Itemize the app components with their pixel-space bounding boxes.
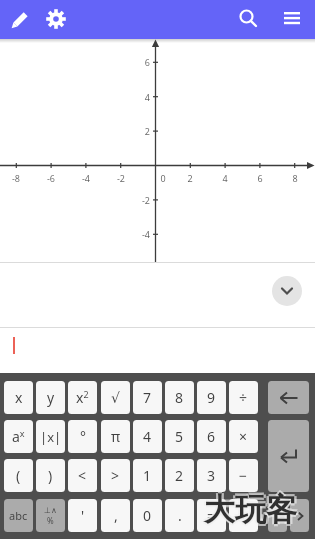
staticText: 9 (207, 388, 216, 407)
staticText: -4 (126, 228, 150, 240)
staticText: 2 (178, 172, 202, 184)
button[interactable]: . (165, 499, 194, 532)
button[interactable]: 6 (197, 420, 226, 453)
button[interactable]: ' (68, 499, 97, 532)
button[interactable]: y (36, 381, 65, 414)
staticText: ÷ (239, 388, 248, 407)
staticText: 6 (126, 56, 150, 68)
staticText: ax (12, 427, 25, 446)
staticText: √ (111, 390, 120, 406)
button[interactable]: 0 (133, 499, 162, 532)
button[interactable]: 5 (165, 420, 194, 453)
button[interactable]: × (229, 420, 258, 453)
staticText: |x| (40, 428, 62, 446)
button[interactable]: , (101, 499, 130, 532)
staticText: 大玩客 (204, 490, 297, 529)
staticText: = (207, 506, 216, 525)
staticText: -8 (4, 172, 28, 184)
staticText: -6 (39, 172, 63, 184)
button[interactable]: < (68, 459, 97, 492)
button[interactable]: ) (36, 459, 65, 492)
staticText: ) (48, 466, 53, 485)
staticText: < (78, 466, 87, 485)
staticText: 6 (207, 427, 216, 446)
staticText: + (239, 506, 248, 525)
staticText: ( (16, 466, 21, 485)
staticText: 7 (143, 388, 152, 407)
staticText: 0 (143, 506, 152, 525)
button[interactable]: 4 (133, 420, 162, 453)
staticText: 0 (151, 172, 175, 184)
staticText: 5 (175, 427, 184, 446)
button[interactable]: x2 (68, 381, 97, 414)
button[interactable] (268, 381, 309, 414)
staticText: 3 (207, 466, 216, 485)
button[interactable]: 2 (165, 459, 194, 492)
staticText: x (15, 388, 23, 407)
button[interactable]: 8 (165, 381, 194, 414)
button[interactable] (6, 5, 34, 33)
staticText: × (239, 427, 248, 446)
button[interactable] (268, 499, 287, 532)
staticText: 6 (248, 172, 272, 184)
button[interactable]: ° (68, 420, 97, 453)
button[interactable]: |x| (36, 420, 65, 453)
staticText: − (239, 466, 248, 485)
staticText: 4 (126, 91, 150, 103)
staticText: 2 (175, 466, 184, 485)
staticText: > (111, 466, 120, 485)
button[interactable]: 7 (133, 381, 162, 414)
button[interactable]: + (229, 499, 258, 532)
button[interactable]: = (197, 499, 226, 532)
button[interactable] (42, 5, 70, 33)
button[interactable]: 9 (197, 381, 226, 414)
staticText: ⊥∧ (44, 506, 57, 515)
button[interactable]: ax (4, 420, 33, 453)
button[interactable] (272, 276, 302, 306)
staticText: , (114, 506, 118, 525)
staticText: 8 (175, 388, 184, 407)
button[interactable] (234, 4, 261, 31)
staticText: 大玩客 (206, 490, 299, 529)
staticText: 大玩客 (202, 490, 295, 529)
button[interactable]: π (101, 420, 130, 453)
staticText: -2 (109, 172, 133, 184)
staticText: π (111, 427, 121, 446)
staticText: ° (80, 427, 86, 446)
button[interactable]: 3 (197, 459, 226, 492)
staticText: 大玩客 (204, 492, 297, 531)
staticText: 1 (143, 466, 152, 485)
staticText: -4 (74, 172, 98, 184)
button[interactable]: > (101, 459, 130, 492)
staticText: 2 (126, 125, 150, 137)
button[interactable]: ( (4, 459, 33, 492)
staticText: x2 (76, 388, 89, 407)
staticText: 4 (143, 427, 152, 446)
button[interactable]: abc (4, 499, 33, 532)
button[interactable] (290, 499, 309, 532)
staticText: 8 (283, 172, 307, 184)
button[interactable]: √ (101, 381, 130, 414)
staticText: -2 (126, 194, 150, 206)
staticText: 大玩客 (204, 488, 297, 527)
staticText: 4 (213, 172, 237, 184)
button[interactable] (280, 5, 308, 33)
button[interactable]: − (229, 459, 258, 492)
staticText: % (47, 515, 54, 526)
staticText: abc (9, 508, 28, 523)
staticText: y (47, 388, 55, 407)
button[interactable]: 1 (133, 459, 162, 492)
button[interactable] (268, 420, 309, 492)
staticText: ' (81, 506, 85, 525)
button[interactable]: ⊥∧ (36, 499, 65, 532)
staticText: . (178, 506, 182, 525)
button[interactable]: ÷ (229, 381, 258, 414)
button[interactable]: x (4, 381, 33, 414)
